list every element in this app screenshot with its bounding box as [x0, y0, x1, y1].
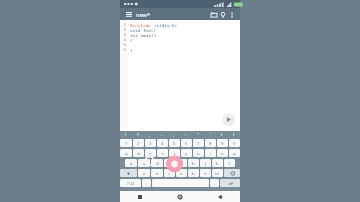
staticText: d — [156, 160, 159, 166]
staticText: 9 — [221, 140, 224, 146]
staticText: l — [229, 160, 231, 166]
staticText: void — [130, 27, 143, 32]
staticText: g — [180, 160, 183, 166]
button[interactable]: 3 — [145, 139, 156, 147]
button[interactable]: a — [125, 159, 137, 167]
button[interactable]: b — [188, 169, 199, 177]
button[interactable]: " — [192, 131, 204, 138]
button[interactable]: 8 — [205, 139, 216, 147]
staticText: 8 — [209, 140, 212, 146]
button[interactable]: Open navigation menu — [124, 10, 133, 19]
button[interactable]: f — [164, 159, 175, 167]
button[interactable]: r — [157, 149, 168, 157]
staticText: t — [174, 150, 176, 156]
staticText: , — [146, 180, 148, 186]
button[interactable]: Backspace — [224, 169, 240, 177]
button[interactable]: Recent apps — [120, 191, 160, 202]
button[interactable]: l — [224, 159, 235, 167]
button[interactable]: ; — [168, 131, 180, 138]
staticText: . — [214, 180, 216, 186]
button[interactable]: g — [176, 159, 187, 167]
staticText: " — [197, 132, 199, 138]
staticText: s — [143, 160, 146, 166]
button[interactable]: , — [144, 131, 156, 138]
button[interactable]: s — [138, 159, 150, 167]
staticText: 3 — [120, 32, 126, 37]
button[interactable]: z — [138, 169, 150, 177]
button[interactable]: Shift — [120, 169, 137, 177]
button[interactable]: e — [145, 149, 156, 157]
staticText: { — [130, 37, 133, 42]
button[interactable]: w — [133, 149, 144, 157]
button[interactable]: o — [217, 149, 228, 157]
staticText: w — [137, 150, 141, 156]
staticText: i — [210, 150, 212, 156]
button[interactable]: Space — [152, 179, 209, 187]
button[interactable]: . — [156, 131, 168, 138]
staticText: p — [233, 150, 236, 156]
button[interactable]: Back — [200, 191, 240, 202]
staticText: 6 — [185, 140, 188, 146]
button[interactable]: d — [151, 159, 163, 167]
button[interactable]: h — [188, 159, 199, 167]
button[interactable]: Open file — [209, 10, 218, 19]
button[interactable]: k — [212, 159, 223, 167]
button[interactable]: 0 — [229, 139, 240, 147]
button[interactable]: u — [193, 149, 204, 157]
staticText: : — [185, 132, 187, 138]
staticText: 1 — [120, 22, 126, 27]
button[interactable]: 2 — [133, 139, 144, 147]
staticText: x — [156, 170, 159, 176]
button[interactable]: n — [200, 169, 211, 177]
button[interactable]: 9 — [217, 139, 228, 147]
staticText: <stdio.h> — [154, 22, 178, 27]
staticText: j — [205, 160, 207, 166]
staticText: 2 — [137, 140, 140, 146]
button[interactable]: . — [210, 179, 219, 187]
button[interactable]: 4 — [157, 139, 168, 147]
button[interactable]: c — [164, 169, 175, 177]
button[interactable]: j — [200, 159, 211, 167]
button[interactable]: Hints — [218, 10, 227, 19]
button[interactable]: ) — [228, 131, 240, 138]
button[interactable]: , — [142, 179, 151, 187]
staticText: r — [162, 150, 164, 156]
button[interactable]: x — [151, 169, 163, 177]
staticText: e — [149, 150, 152, 156]
button[interactable]: y — [181, 149, 192, 157]
staticText: foo() — [143, 27, 156, 32]
button[interactable]: i — [205, 149, 216, 157]
button[interactable]: 1 — [120, 139, 132, 147]
button[interactable]: p — [229, 149, 240, 157]
button[interactable]: More options — [227, 10, 236, 19]
staticText: int — [130, 32, 141, 37]
button[interactable]: ? — [132, 131, 144, 138]
button[interactable]: ?123 — [120, 179, 141, 187]
staticText: a — [130, 160, 133, 166]
staticText: } — [130, 47, 133, 52]
button[interactable]: Run — [222, 113, 235, 126]
button[interactable]: Enter — [220, 179, 240, 187]
staticText: ?123 — [127, 181, 135, 186]
button[interactable]: ' — [204, 131, 216, 138]
button[interactable]: q — [120, 149, 132, 157]
staticText: v — [180, 170, 183, 176]
staticText: ' — [210, 132, 211, 138]
staticText: u — [197, 150, 200, 156]
button[interactable]: 5 — [169, 139, 180, 147]
button[interactable]: 6 — [181, 139, 192, 147]
button[interactable]: m — [212, 169, 223, 177]
button[interactable]: 7 — [193, 139, 204, 147]
button[interactable]: ( — [216, 131, 228, 138]
button[interactable]: : — [180, 131, 192, 138]
button[interactable]: ! — [120, 131, 132, 138]
button[interactable]: Home — [160, 191, 200, 202]
button[interactable]: t — [169, 149, 180, 157]
staticText: c — [168, 170, 171, 176]
staticText: #include — [130, 22, 154, 27]
staticText: k — [216, 160, 219, 166]
staticText: 6 — [120, 47, 126, 52]
button[interactable]: v — [176, 169, 187, 177]
staticText: q — [125, 150, 128, 156]
staticText: n — [204, 170, 207, 176]
